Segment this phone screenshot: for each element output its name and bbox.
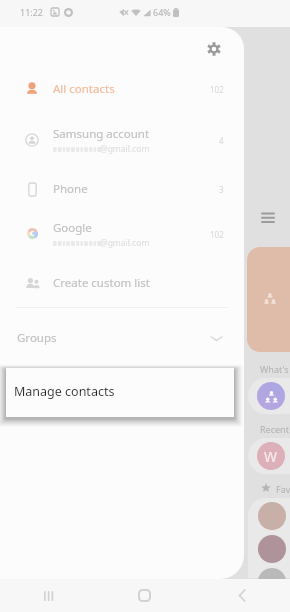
staticText: @gmail.com [100, 143, 150, 155]
button[interactable]: Home [96, 579, 193, 612]
staticText: W [264, 447, 278, 466]
button[interactable]: Samsung account [0, 118, 244, 162]
button[interactable]: Manage contacts [6, 368, 234, 417]
staticText: 102 [210, 229, 224, 240]
button[interactable]: Google [0, 212, 244, 256]
staticText: What's [260, 363, 289, 375]
staticText: 3 [219, 184, 224, 195]
staticText: Phone [53, 181, 88, 197]
button[interactable] [248, 438, 290, 474]
button[interactable]: Open navigation menu [261, 210, 275, 224]
staticText: All contacts [53, 81, 115, 97]
staticText: @gmail.com [100, 237, 150, 249]
staticText: 64% [153, 6, 171, 18]
button[interactable]: Settings [199, 34, 228, 63]
staticText: Groups [17, 330, 57, 346]
button[interactable]: Back [193, 579, 290, 612]
button[interactable]: Phone [0, 171, 244, 207]
button[interactable]: Create custom list [0, 265, 244, 301]
button[interactable] [248, 378, 290, 414]
button[interactable] [247, 247, 290, 352]
staticText: Google [53, 220, 92, 236]
staticText: Fav [276, 483, 290, 495]
staticText: Manage contacts [14, 383, 115, 400]
staticText: Recent [260, 423, 289, 435]
staticText: Samsung account [53, 126, 150, 142]
button[interactable]: Groups [0, 320, 244, 356]
staticText: Create custom list [53, 275, 150, 291]
button[interactable]: Recent apps [0, 579, 96, 612]
staticText: 11:22 [20, 6, 44, 18]
button[interactable]: All contacts [0, 71, 244, 107]
staticText: 102 [210, 84, 224, 95]
staticText: 4 [219, 135, 224, 146]
